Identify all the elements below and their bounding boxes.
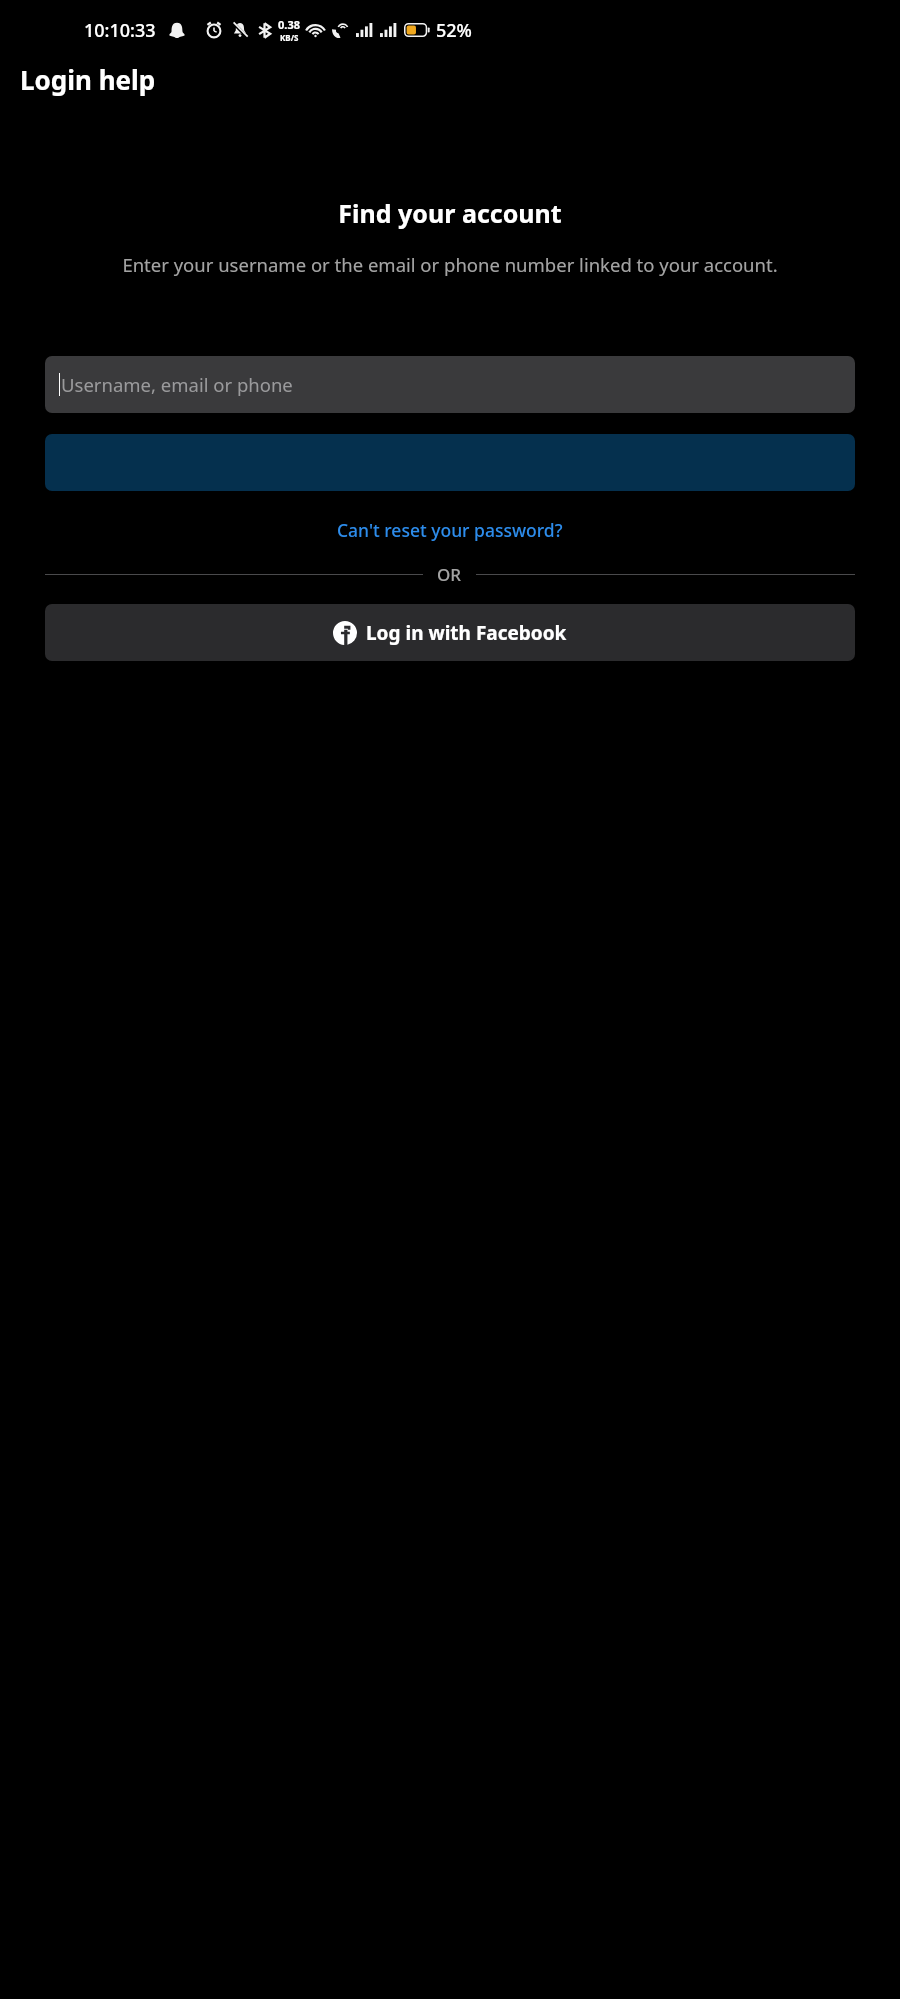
staticText: KB/S — [280, 32, 299, 43]
button[interactable]: Username, email or phone — [45, 356, 855, 413]
staticText: Login help — [20, 62, 156, 97]
staticText: Find your account — [338, 196, 562, 230]
staticText: Can't reset your password? — [337, 518, 563, 542]
staticText: Log in with Facebook — [366, 620, 567, 646]
button[interactable]: Log in with Facebook — [45, 604, 855, 661]
staticText: Username, email or phone — [61, 372, 293, 397]
staticText: 0.38 — [278, 17, 300, 32]
staticText: OR — [437, 563, 462, 586]
staticText: 10:10:33 — [84, 18, 156, 43]
button[interactable]: Can't reset your password? — [329, 514, 571, 546]
staticText: Enter your username or the email or phon… — [45, 252, 855, 277]
staticText: 52% — [436, 18, 472, 43]
